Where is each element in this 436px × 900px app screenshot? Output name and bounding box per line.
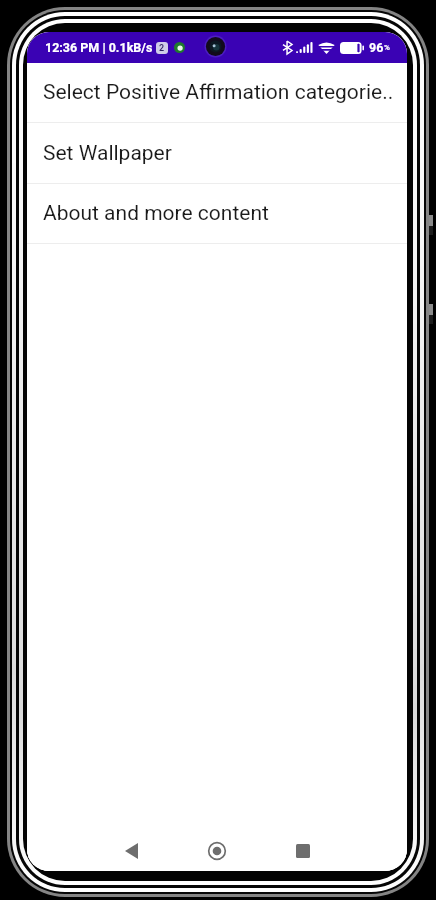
staticText: 2: [159, 43, 165, 54]
staticText: 96: [369, 40, 384, 55]
button[interactable]: Back: [109, 831, 153, 871]
button[interactable]: Home: [195, 831, 239, 871]
button[interactable]: Select Positive Affirmation categorie..: [27, 63, 407, 122]
staticText: Select Positive Affirmation categorie..: [43, 80, 394, 105]
button[interactable]: Set Wallpaper: [27, 123, 407, 183]
button[interactable]: Recent apps: [281, 831, 325, 871]
staticText: %: [384, 43, 390, 52]
staticText: 12:36 PM | 0.1kB/s: [45, 40, 153, 55]
staticText: About and more content: [43, 201, 269, 226]
button[interactable]: About and more content: [27, 184, 407, 243]
staticText: Set Wallpaper: [43, 141, 172, 166]
